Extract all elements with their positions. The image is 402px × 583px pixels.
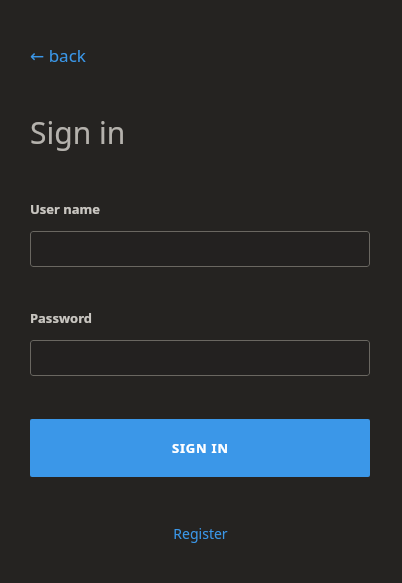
- staticText: SIGN IN: [172, 439, 229, 457]
- staticText: Password: [30, 309, 92, 327]
- staticText: Register: [173, 524, 228, 543]
- staticText: User name: [30, 200, 100, 218]
- staticText: ← back: [30, 44, 86, 67]
- button[interactable]: ← back: [30, 44, 86, 67]
- button[interactable]: Register: [167, 522, 234, 545]
- button[interactable]: SIGN IN: [30, 419, 370, 477]
- button[interactable]: [30, 231, 370, 267]
- staticText: Sign in: [30, 112, 126, 153]
- button[interactable]: [30, 340, 370, 376]
